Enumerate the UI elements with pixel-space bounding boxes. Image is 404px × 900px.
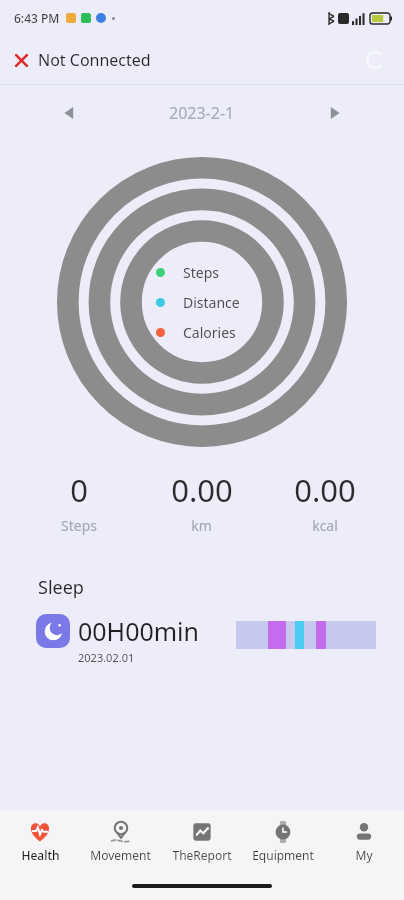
staticText: Steps	[183, 263, 219, 282]
staticText: Calories	[183, 323, 236, 342]
staticText: My	[355, 847, 373, 863]
button[interactable]: My	[323, 810, 404, 872]
staticText: TheReport	[172, 847, 232, 863]
button[interactable]: 0	[18, 469, 140, 535]
staticText: Health	[21, 847, 60, 863]
staticText: 0.00	[171, 469, 233, 511]
staticText: Not Connected	[38, 49, 151, 71]
staticText: kcal	[312, 516, 338, 535]
button[interactable]: 00H00min	[0, 614, 404, 665]
staticText: km	[191, 516, 212, 535]
staticText: Movement	[90, 847, 151, 863]
button[interactable]: 0.00	[140, 469, 263, 535]
button[interactable]: 0.00	[263, 469, 386, 535]
staticText: 0.00	[294, 469, 356, 511]
staticText: Distance	[183, 293, 240, 312]
button[interactable]: Previous day	[52, 96, 86, 130]
button[interactable]: Health	[0, 810, 80, 872]
staticText: Sleep	[38, 575, 84, 600]
button[interactable]: Movement	[80, 810, 161, 872]
button[interactable]: Equipment	[242, 810, 323, 872]
button[interactable]: Next day	[318, 96, 352, 130]
staticText: 00H00min	[78, 614, 200, 648]
staticText: Steps	[61, 516, 97, 535]
staticText: 0	[70, 469, 88, 511]
staticText: 6:43 PM	[14, 10, 60, 26]
button[interactable]: TheReport	[161, 810, 242, 872]
button[interactable]: Not Connected	[0, 43, 161, 77]
staticText: Equipment	[252, 847, 314, 863]
staticText: 2023.02.01	[78, 650, 135, 665]
staticText: 2023-2-1	[169, 102, 235, 124]
